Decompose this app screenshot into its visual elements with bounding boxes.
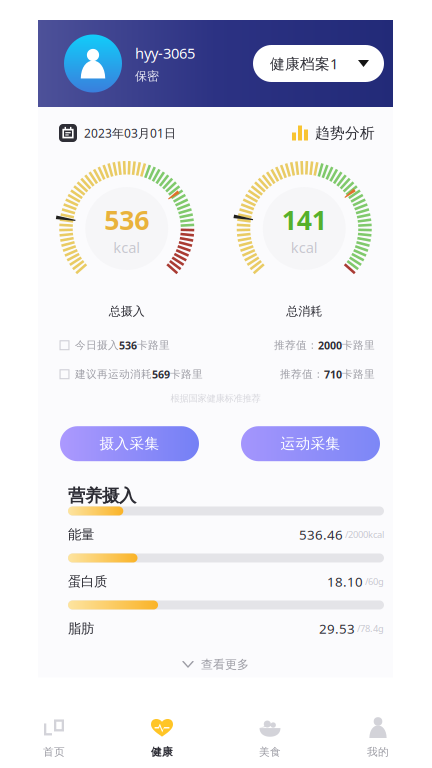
staticText: 脂肪	[68, 620, 94, 637]
staticText: hyy-3065	[135, 43, 195, 63]
staticText: 141	[282, 202, 327, 237]
staticText: 保密	[135, 69, 159, 84]
staticText: 710	[324, 367, 342, 381]
staticText: 总消耗	[286, 304, 322, 319]
staticText: 趋势分析	[315, 124, 375, 142]
button[interactable]: 运动采集	[241, 426, 380, 461]
staticText: 今日摄入	[75, 339, 119, 352]
staticText: 536.46	[299, 526, 343, 543]
staticText: 运动采集	[280, 435, 340, 453]
staticText: /2000kcal	[343, 528, 384, 541]
staticText: 建议再运动消耗	[75, 368, 152, 381]
staticText: 摄入采集	[99, 435, 159, 453]
staticText: 卡路里	[342, 368, 375, 381]
staticText: 美食	[259, 745, 281, 758]
staticText: 卡路里	[170, 368, 203, 381]
staticText: 健康档案1	[270, 54, 338, 73]
staticText: 2000	[318, 338, 342, 352]
button[interactable]: 美食	[216, 706, 324, 768]
button[interactable]: 摄入采集	[60, 426, 199, 461]
staticText: 推荐值：	[274, 339, 318, 352]
staticText: kcal	[291, 237, 318, 257]
staticText: 我的	[367, 745, 389, 758]
staticText: 18.10	[327, 573, 363, 590]
staticText: 根据国家健康标准推荐	[170, 393, 260, 404]
staticText: 总摄入	[109, 304, 145, 319]
staticText: 29.53	[319, 620, 355, 637]
staticText: /60g	[363, 575, 384, 588]
staticText: 卡路里	[342, 339, 375, 352]
button[interactable]: 首页	[0, 706, 108, 768]
staticText: kcal	[113, 237, 140, 257]
staticText: 查看更多	[201, 657, 249, 672]
button[interactable]: 查看更多	[38, 651, 393, 677]
staticText: 卡路里	[137, 339, 170, 352]
staticText: 推荐值：	[280, 368, 324, 381]
staticText: 2023年03月01日	[84, 125, 176, 141]
button[interactable]: 我的	[324, 706, 432, 768]
button[interactable]: 趋势分析	[292, 124, 375, 142]
staticText: 能量	[68, 526, 94, 543]
staticText: 蛋白质	[68, 573, 107, 590]
staticText: 首页	[43, 745, 65, 758]
staticText: 536	[104, 202, 149, 237]
staticText: 营养摄入	[68, 485, 136, 506]
button[interactable]: 健康档案1	[253, 45, 384, 82]
staticText: 569	[152, 367, 170, 381]
staticText: 健康	[151, 745, 173, 758]
staticText: 536	[119, 338, 137, 352]
staticText: /78.4g	[355, 622, 384, 635]
button[interactable]: 健康	[108, 706, 216, 768]
